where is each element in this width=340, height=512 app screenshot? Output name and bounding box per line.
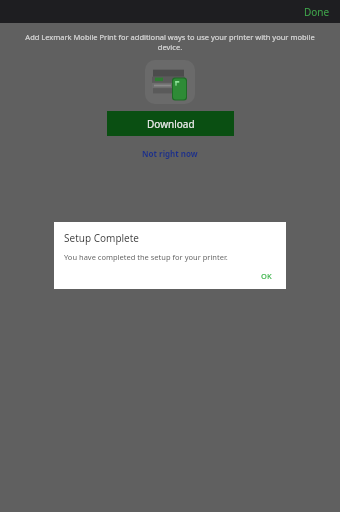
staticText: OK: [261, 271, 272, 281]
button[interactable]: Download: [107, 111, 234, 136]
staticText: Add Lexmark Mobile Print for additional …: [14, 32, 326, 52]
staticText: Not right now: [142, 148, 198, 159]
button[interactable]: Done: [294, 1, 340, 23]
staticText: Setup Complete: [64, 231, 140, 245]
staticText: You have completed the setup for your pr…: [64, 252, 228, 262]
staticText: Done: [304, 5, 330, 19]
button[interactable]: OK: [247, 267, 286, 285]
button[interactable]: Not right now: [134, 146, 206, 161]
staticText: Download: [147, 117, 195, 131]
